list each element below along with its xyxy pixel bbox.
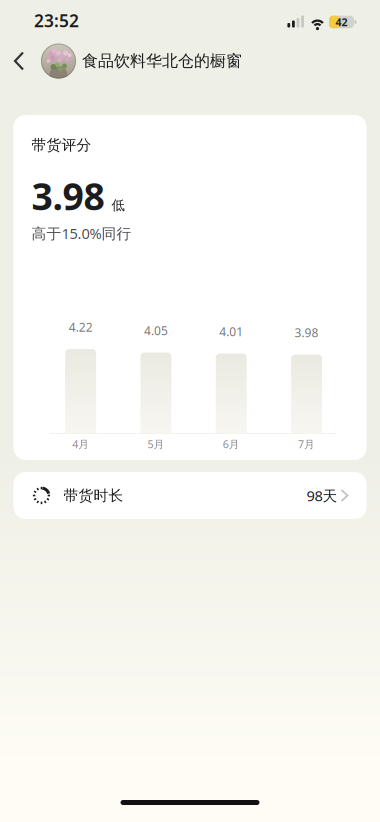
staticText: 3.98 <box>31 171 104 221</box>
staticText: 23:52 <box>34 9 79 32</box>
staticText: 低 <box>111 197 124 214</box>
staticText: 5月 <box>147 437 164 451</box>
staticText: 3.98 <box>294 325 318 340</box>
staticText: 高于15.0%同行 <box>31 224 131 243</box>
staticText: 6月 <box>223 437 240 451</box>
staticText: 4.05 <box>144 323 168 338</box>
staticText: 4月 <box>72 437 89 451</box>
staticText: 食品饮料华北仓的橱窗 <box>82 51 242 71</box>
staticText: 98天 <box>306 486 337 505</box>
staticText: 42 <box>335 15 347 29</box>
staticText: 带货评分 <box>31 136 91 154</box>
staticText: 带货时长 <box>63 486 123 504</box>
staticText: 4.22 <box>69 319 93 335</box>
staticText: 4.01 <box>219 324 243 339</box>
button[interactable]: Back <box>0 44 33 78</box>
staticText: 7月 <box>298 437 315 451</box>
button[interactable]: 带货时长 <box>13 472 366 519</box>
